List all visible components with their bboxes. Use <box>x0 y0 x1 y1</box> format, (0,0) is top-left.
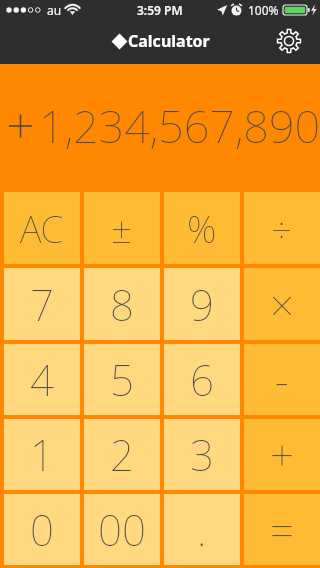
staticText: 3:59 PM <box>137 2 183 18</box>
staticText: . <box>197 501 207 558</box>
staticText: 1,234,567,890 <box>39 95 320 156</box>
staticText: 6 <box>190 351 214 408</box>
button[interactable]: 3 <box>164 419 240 490</box>
staticText: 1 <box>30 426 54 483</box>
button[interactable]: ÷ <box>244 192 320 264</box>
staticText: 4 <box>30 351 54 408</box>
staticText: × <box>270 276 294 333</box>
staticText: ± <box>111 203 133 253</box>
button[interactable]: AC <box>4 192 80 264</box>
staticText: au <box>47 2 62 18</box>
button[interactable]: Settings <box>271 24 307 60</box>
button[interactable]: 7 <box>4 268 80 340</box>
button[interactable]: 5 <box>84 344 160 415</box>
button[interactable]: 2 <box>84 419 160 490</box>
staticText: + <box>270 426 294 483</box>
staticText: 5 <box>110 351 134 408</box>
staticText: ÷ <box>271 203 293 253</box>
button[interactable]: 4 <box>4 344 80 415</box>
staticText: 7 <box>30 276 54 333</box>
button[interactable]: × <box>244 268 320 340</box>
staticText: % <box>187 203 217 253</box>
button[interactable]: 00 <box>84 494 160 565</box>
button[interactable]: - <box>244 344 320 415</box>
staticText: 8 <box>110 276 134 333</box>
button[interactable]: + <box>244 419 320 490</box>
staticText: 00 <box>98 501 146 558</box>
button[interactable]: 0 <box>4 494 80 565</box>
button[interactable]: ± <box>84 192 160 264</box>
staticText: 0 <box>30 501 54 558</box>
staticText: Calculator <box>128 30 210 52</box>
staticText: = <box>270 501 294 558</box>
button[interactable]: = <box>244 494 320 565</box>
staticText: 2 <box>110 426 134 483</box>
button[interactable]: . <box>164 494 240 565</box>
staticText: 3 <box>190 426 214 483</box>
staticText: AC <box>20 203 64 253</box>
staticText: - <box>275 351 289 408</box>
staticText: 9 <box>190 276 214 333</box>
button[interactable]: 1 <box>4 419 80 490</box>
button[interactable]: 8 <box>84 268 160 340</box>
button[interactable]: 9 <box>164 268 240 340</box>
staticText: 100% <box>248 2 279 18</box>
button[interactable]: 6 <box>164 344 240 415</box>
button[interactable]: % <box>164 192 240 264</box>
